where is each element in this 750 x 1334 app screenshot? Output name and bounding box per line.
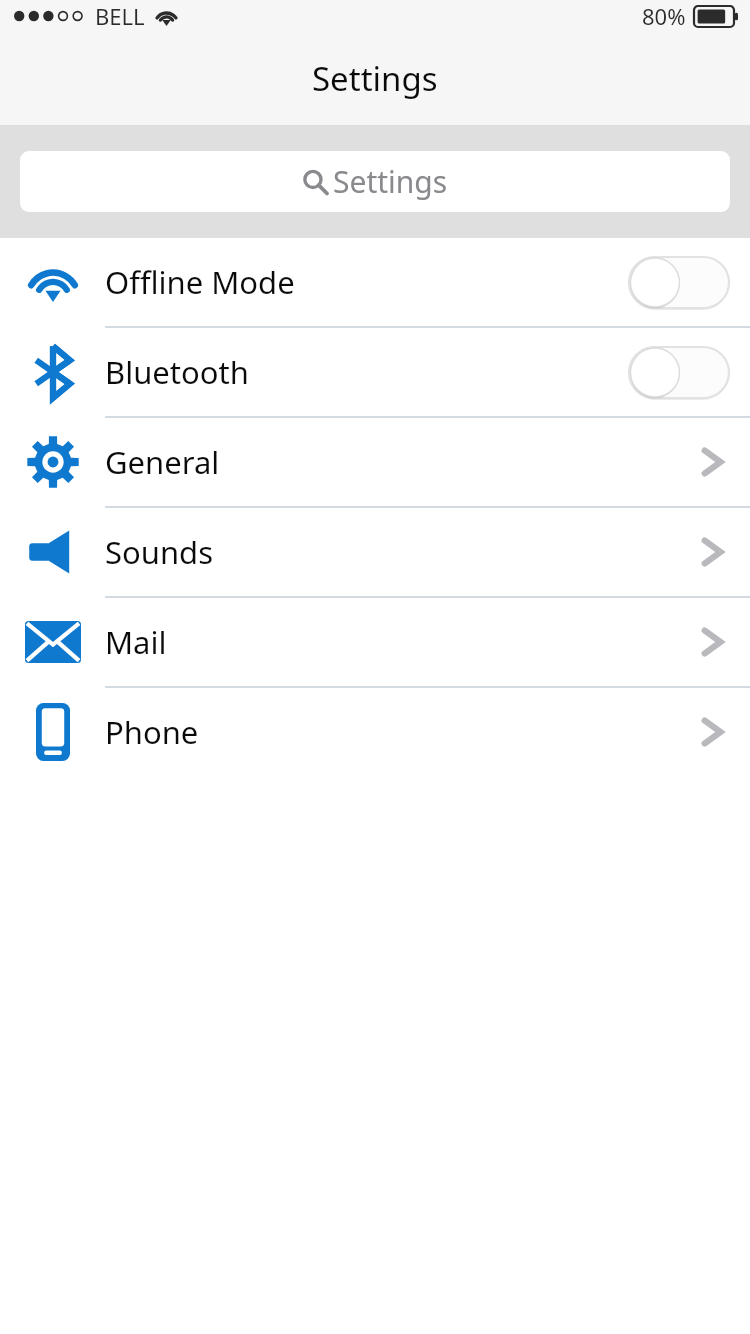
- staticText: Bluetooth: [105, 351, 628, 393]
- other: Open: [696, 620, 730, 664]
- button[interactable]: General: [0, 418, 750, 506]
- staticText: General: [105, 441, 696, 483]
- staticText: Settings: [333, 161, 448, 202]
- button[interactable]: Toggle: [628, 346, 730, 399]
- staticText: Offline Mode: [105, 261, 628, 303]
- staticText: 80%: [642, 1, 686, 31]
- button[interactable]: Offline Mode: [0, 238, 750, 326]
- staticText: Settings: [312, 56, 438, 101]
- other: Open: [696, 440, 730, 484]
- button[interactable]: Mail: [0, 598, 750, 686]
- staticText: Mail: [105, 621, 696, 663]
- staticText: Phone: [105, 711, 696, 753]
- button[interactable]: Bluetooth: [0, 328, 750, 416]
- staticText: BELL: [95, 1, 145, 31]
- button[interactable]: Phone: [0, 688, 750, 776]
- staticText: Sounds: [105, 531, 696, 573]
- button[interactable]: Settings: [20, 151, 730, 212]
- other: Open: [696, 710, 730, 754]
- button[interactable]: Sounds: [0, 508, 750, 596]
- button[interactable]: Toggle: [628, 256, 730, 309]
- other: Open: [696, 530, 730, 574]
